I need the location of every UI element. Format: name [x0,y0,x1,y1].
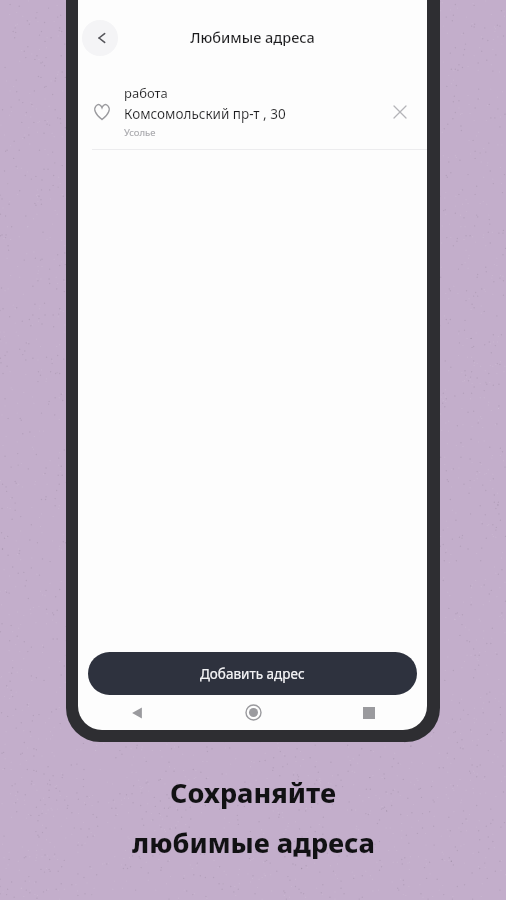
staticText: любимые адреса [132,824,375,861]
button[interactable]: Избранное [89,99,115,125]
button[interactable]: Удалить [383,95,417,129]
button[interactable]: Добавить адрес [88,652,417,695]
staticText: Сохраняйте [170,774,336,811]
staticText: работа [124,84,168,102]
button[interactable]: Избранное [78,74,427,149]
button[interactable]: Назад [78,695,195,730]
staticText: Комсомольский пр-т , 30 [124,105,286,123]
button[interactable]: Главный экран [195,695,311,730]
button[interactable]: Недавние приложения [311,695,427,730]
staticText: Усолье [124,126,156,139]
staticText: Любимые адреса [190,27,315,47]
staticText: Добавить адрес [200,665,305,683]
button[interactable]: Назад [82,20,118,56]
